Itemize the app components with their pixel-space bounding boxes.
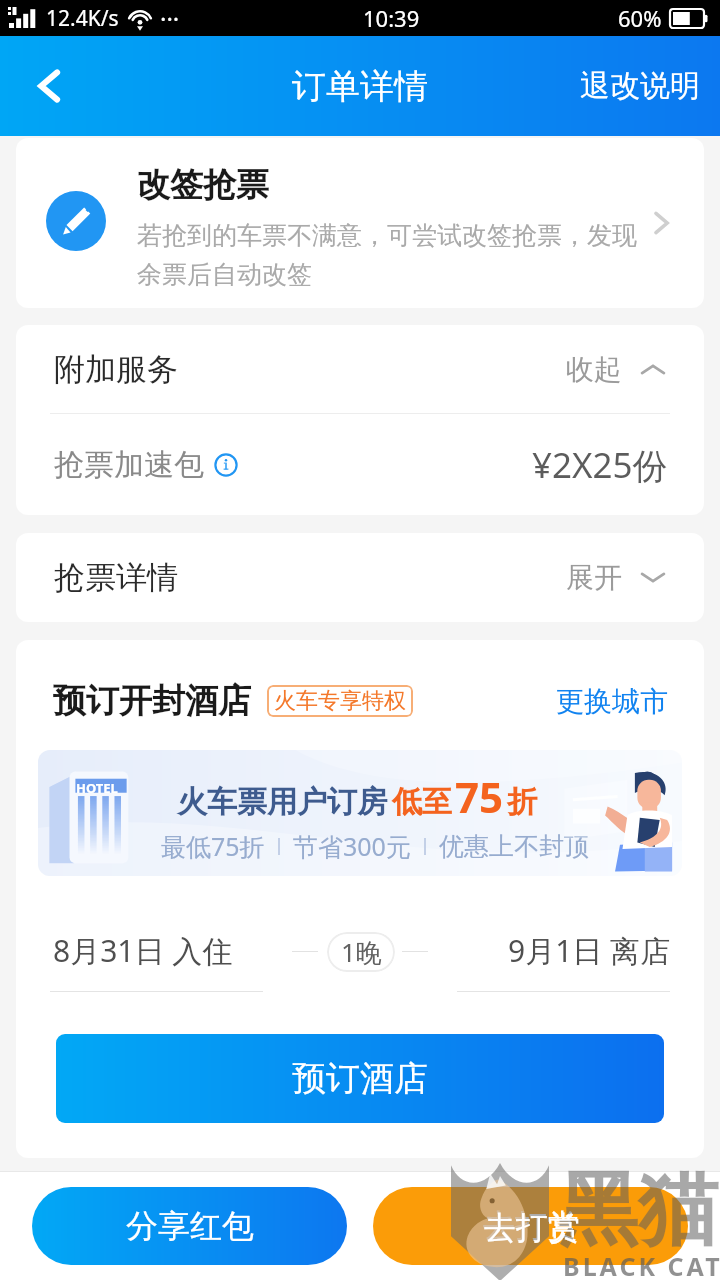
staticText: 收起 xyxy=(566,352,622,387)
staticText: 订单详情 xyxy=(292,65,428,108)
staticText: 抢票加速包 xyxy=(54,446,204,484)
button[interactable]: 预订酒店 xyxy=(56,1034,664,1123)
staticText: 8月31日 入住 xyxy=(53,930,233,971)
staticText: 节省300元 xyxy=(293,829,411,863)
staticText: 抢票详情 xyxy=(54,558,178,597)
staticText: 更换城市 xyxy=(556,684,668,719)
staticText: 附加服务 xyxy=(54,350,178,389)
staticText: 12.4K/s xyxy=(46,4,119,33)
button[interactable]: 去打赏 xyxy=(373,1187,688,1265)
staticText: 火车票用户订房 xyxy=(177,783,387,821)
staticText: 展开 xyxy=(566,560,622,595)
staticText: 60% xyxy=(618,3,662,33)
staticText: 分享红包 xyxy=(126,1206,254,1246)
staticText: 预订酒店 xyxy=(292,1057,428,1100)
staticText: 75 xyxy=(455,768,504,825)
staticText: 10:39 xyxy=(363,3,420,33)
staticText: 退改说明 xyxy=(580,67,700,105)
button[interactable]: 抢票详情 xyxy=(16,533,704,622)
staticText: 火车专享特权 xyxy=(274,687,406,715)
staticText: 折 xyxy=(507,783,537,821)
staticText: 预订开封酒店 xyxy=(53,680,251,722)
staticText: 9月1日 离店 xyxy=(508,930,671,971)
button[interactable]: 附加服务 xyxy=(16,325,704,413)
button[interactable]: 更换城市 xyxy=(556,684,668,719)
staticText: 优惠上不封顶 xyxy=(439,831,589,862)
staticText: 改签抢票 xyxy=(137,164,269,206)
staticText: HOTEL xyxy=(76,779,118,797)
staticText: 黑猫 xyxy=(558,1160,718,1261)
button[interactable]: 分享红包 xyxy=(32,1187,347,1265)
staticText: 去打赏 xyxy=(483,1206,579,1246)
staticText: ··· xyxy=(160,2,180,35)
staticText: ¥2X25份 xyxy=(532,441,668,489)
button[interactable]: Back xyxy=(0,36,98,136)
staticText: BLACK CAT xyxy=(563,1249,720,1280)
staticText: 最低75折 xyxy=(161,829,265,863)
staticText: 1晚 xyxy=(341,934,382,970)
staticText: 去打赏 xyxy=(484,1208,580,1248)
button[interactable]: 退改说明 xyxy=(564,36,720,136)
button[interactable]: 抢票加速包 xyxy=(16,414,704,515)
staticText: 低至 xyxy=(392,783,452,821)
staticText: 若抢到的车票不满意，可尝试改签抢票，发现余票后自动改签 xyxy=(137,220,642,291)
button[interactable]: 改签抢票 xyxy=(16,138,704,308)
